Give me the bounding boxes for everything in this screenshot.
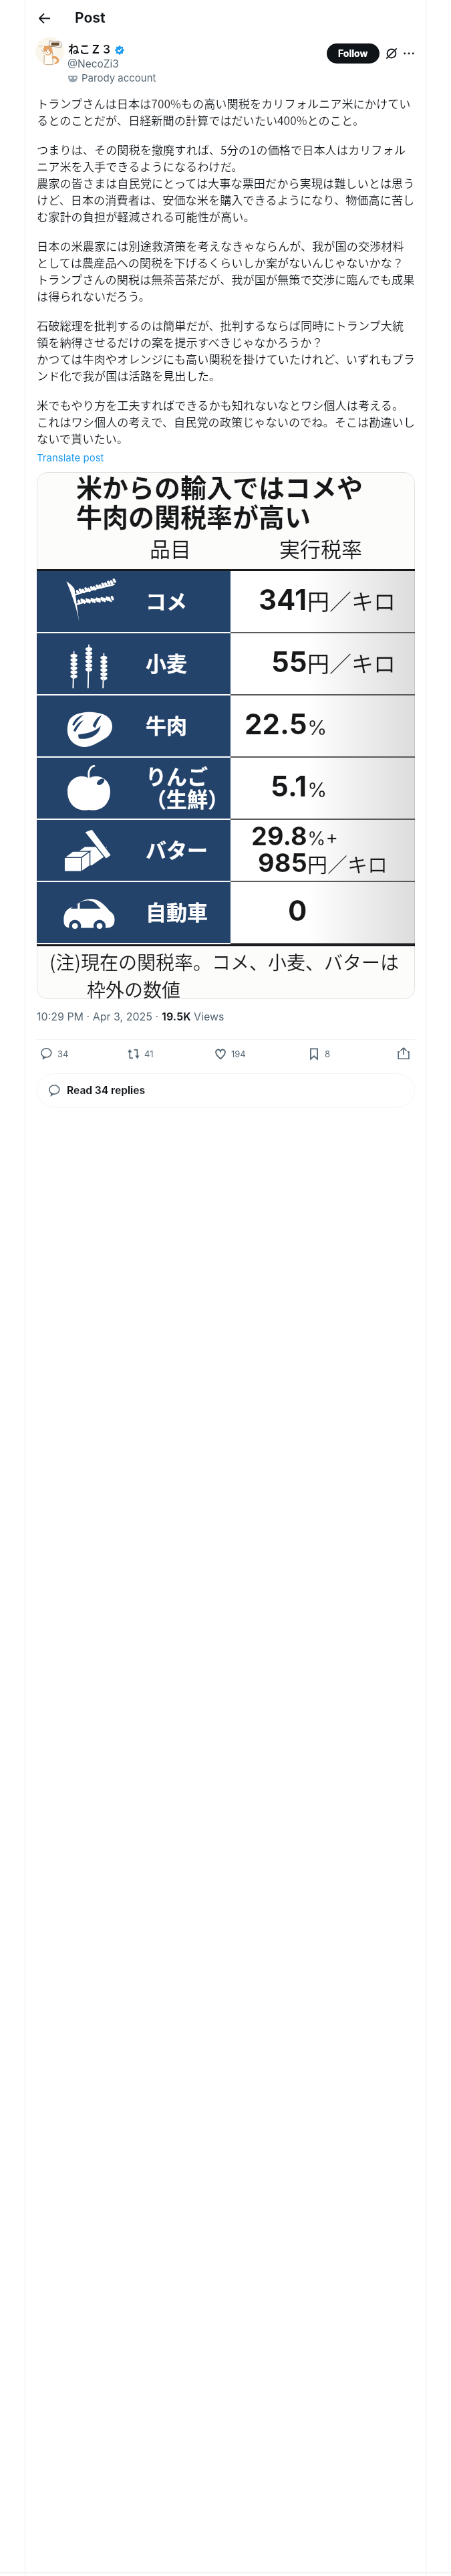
staticText: 小麦 [146,653,187,676]
staticText: % [307,775,327,802]
staticText: (注)現在の関税率。コメ、小麦、バターは 枠外の数値 [49,948,399,999]
staticText: 10:29 PM · Apr 3, 2025 · [37,1011,162,1023]
staticText: 品目 [150,539,191,562]
staticText: %+ [307,825,339,851]
staticText: 41 [144,1049,154,1059]
staticText: 円／キロ [307,587,396,616]
staticText: 985 [258,851,307,877]
staticText: 0 [288,898,307,927]
staticText: 米でもやり方を工夫すればできるかも知れないなとワシ個人は考える。 これはワシ個人… [37,397,415,447]
staticText: 自動車 [146,902,208,925]
button[interactable]: Share [394,1043,414,1063]
staticText: 5.1 [271,774,307,802]
button[interactable] [35,37,64,66]
staticText: 石破総理を批判するのは簡単だが、批判するならば同時にトランプ大統領を納得させるだ… [37,317,415,384]
button[interactable]: 米からの輸入ではコメや 牛肉の関税率が高い [37,472,415,999]
button[interactable]: 194 [214,1044,246,1064]
staticText: つまりは、その関税を撤廃すれば、5分の1の価格で日本人はカリフォルニア米を入手で… [37,141,415,225]
staticText: ねこＺ３ [68,43,112,56]
staticText: 22.5 [245,712,307,740]
staticText: 8 [325,1049,331,1059]
staticText: バター [146,840,208,863]
staticText: 55 [271,649,307,678]
staticText: @NecoZi3 [67,58,119,70]
staticText: 19.5K [162,1011,194,1023]
staticText: 日本の米農家には別途救済策を考えなきゃならんが、我が国の交渉材料としては農産品へ… [37,237,415,304]
staticText: 実行税率 [279,539,362,562]
button[interactable]: Grok actions [382,44,401,63]
staticText: 牛肉 [146,716,187,738]
staticText: 34 [57,1049,69,1059]
button[interactable]: Read 34 replies [37,1073,415,1107]
staticText: Views [194,1011,224,1023]
staticText: 29.8 [251,824,307,851]
staticText: りんご （生鮮） [146,766,229,812]
button[interactable]: Back [32,6,56,30]
button[interactable]: 8 [308,1044,331,1064]
button[interactable]: Translate post [37,452,104,464]
button[interactable]: More options [400,44,418,63]
staticText: Read 34 replies [67,1085,146,1097]
staticText: 341 [259,587,307,616]
staticText: 円／キロ [307,649,396,678]
staticText: Translate post [37,452,104,464]
button[interactable]: 41 [128,1044,154,1064]
staticText: Post [75,9,106,26]
button[interactable]: 34 [41,1044,69,1064]
staticText: Parody account [82,72,156,84]
staticText: Follow [338,48,368,59]
staticText: コメ [146,591,187,614]
staticText: 円／キロ [307,851,388,877]
staticText: % [307,713,327,740]
button[interactable]: Follow [327,43,380,64]
staticText: 米からの輸入ではコメや 牛肉の関税率が高い [76,474,363,533]
staticText: トランプさんは日本は700%もの高い関税をカリフォルニア米にかけているとのことだ… [37,95,415,128]
staticText: 194 [231,1049,246,1059]
